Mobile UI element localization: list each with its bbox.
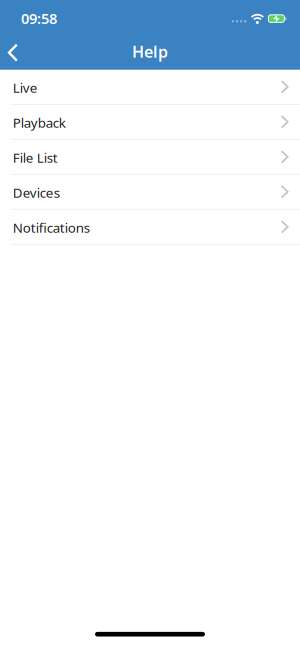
- staticText: File List: [13, 149, 58, 166]
- staticText: 09:58: [21, 8, 57, 28]
- staticText: Devices: [13, 184, 60, 201]
- staticText: Live: [13, 79, 38, 96]
- staticText: Notifications: [13, 219, 90, 236]
- button[interactable]: Playback: [0, 105, 300, 140]
- staticText: Playback: [13, 114, 66, 131]
- button[interactable]: Notifications: [0, 210, 300, 245]
- button[interactable]: File List: [0, 140, 300, 175]
- button[interactable]: Devices: [0, 175, 300, 210]
- button[interactable]: Back: [0, 33, 32, 70]
- button[interactable]: Live: [0, 70, 300, 105]
- staticText: Help: [132, 41, 168, 62]
